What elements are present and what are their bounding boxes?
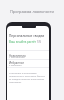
staticText: Ваш кешбэк растёт [9,40,36,44]
staticText: Программа лояльности [0,9,64,14]
staticText: Накопления [9,54,26,58]
staticText: Избранное [9,61,25,65]
staticText: Участвуйте в программе лояльности и полу… [9,72,47,84]
staticText: 5% [37,40,42,44]
staticText: Персональные скидки [9,34,45,38]
staticText: 1 250 бонусов [9,56,25,59]
staticText: 3 магазина [9,64,22,67]
